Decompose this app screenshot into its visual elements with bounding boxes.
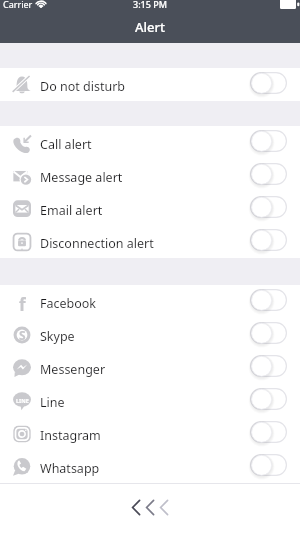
staticText: Messenger: [40, 361, 106, 378]
button[interactable]: Toggle: [250, 130, 287, 155]
button[interactable]: Email alert: [0, 192, 300, 225]
staticText: Skype: [40, 328, 75, 345]
staticText: LINE: [16, 397, 29, 404]
staticText: 3:15 PM: [133, 0, 167, 10]
button[interactable]: Instagram: [0, 417, 300, 450]
button[interactable]: Toggle: [250, 454, 287, 479]
button[interactable]: Disconnection alert: [0, 225, 300, 258]
staticText: Call alert: [40, 136, 92, 153]
button[interactable]: Toggle: [250, 355, 287, 380]
button[interactable]: Whatsapp: [0, 450, 300, 483]
button[interactable]: Toggle: [250, 322, 287, 347]
button[interactable]: Do not disturb: [0, 68, 300, 101]
button[interactable]: Toggle: [250, 72, 287, 97]
staticText: Instagram: [40, 427, 101, 444]
staticText: Message alert: [40, 169, 123, 186]
button[interactable]: Toggle: [250, 388, 287, 413]
staticText: Carrier: [3, 0, 33, 10]
button[interactable]: Toggle: [250, 289, 287, 314]
button[interactable]: LINE: [0, 384, 300, 417]
button[interactable]: S: [0, 318, 300, 351]
button[interactable]: Message alert: [0, 159, 300, 192]
staticText: Facebook: [40, 295, 97, 312]
staticText: S: [19, 327, 26, 343]
button[interactable]: Messenger: [0, 351, 300, 384]
staticText: Disconnection alert: [40, 235, 154, 252]
button[interactable]: Toggle: [250, 421, 287, 446]
staticText: f: [19, 293, 26, 311]
staticText: Email alert: [40, 202, 103, 219]
staticText: Do not disturb: [40, 78, 125, 95]
button[interactable]: Toggle: [250, 229, 287, 254]
button[interactable]: Toggle: [250, 196, 287, 221]
button[interactable]: Call alert: [0, 126, 300, 159]
button[interactable]: Toggle: [250, 163, 287, 188]
staticText: Line: [40, 394, 65, 411]
button[interactable]: Back: [122, 496, 178, 519]
staticText: Whatsapp: [40, 460, 100, 477]
staticText: Alert: [135, 18, 165, 36]
button[interactable]: f: [0, 285, 300, 318]
